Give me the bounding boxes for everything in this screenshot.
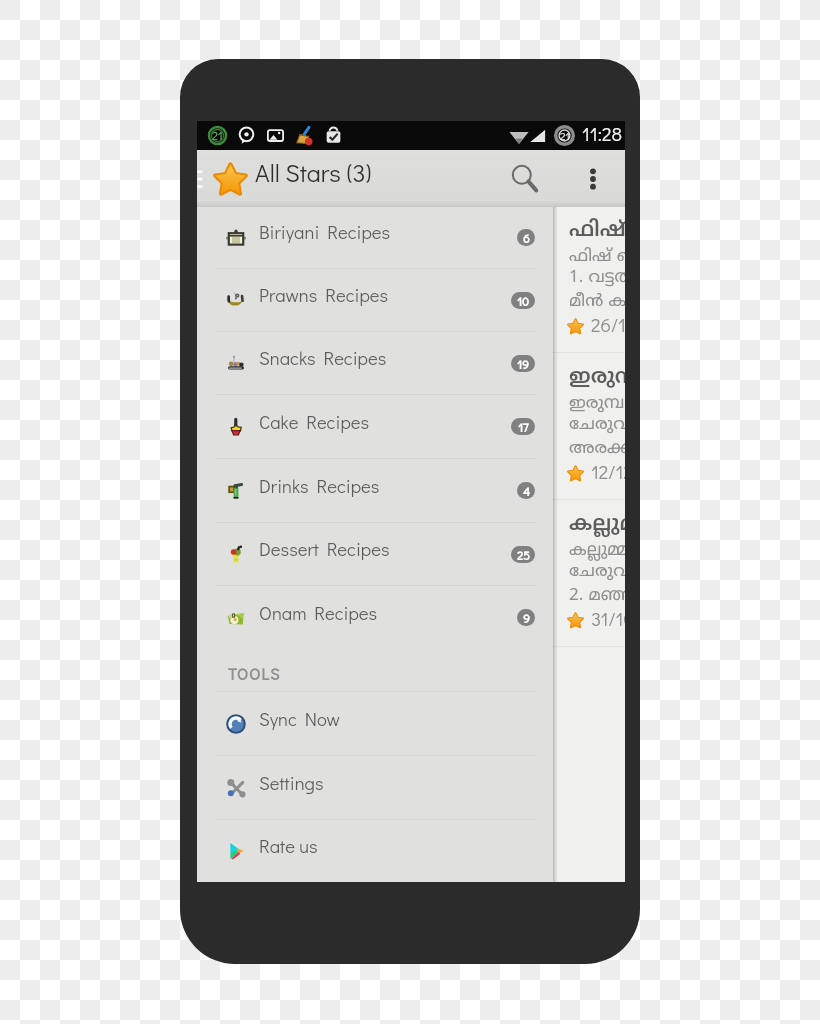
staticText: Cake Recipes <box>259 410 370 434</box>
staticText: 11:28 <box>582 121 622 146</box>
staticText: 4 <box>523 483 530 499</box>
staticText: 19 <box>517 356 529 372</box>
staticText: കല്ലുമ്മ <box>569 512 625 538</box>
staticText: 1. വട്ടത്തിൽ <box>569 267 625 288</box>
button[interactable]: Open navigation drawer <box>197 150 211 207</box>
button[interactable]: Search <box>502 155 550 203</box>
button[interactable]: Cake Recipes <box>197 395 553 458</box>
staticText: 31/10 <box>591 606 625 631</box>
staticText: ഫിഷ് മോളി <box>569 218 625 244</box>
button[interactable]: Rate us <box>197 820 553 881</box>
staticText: Snacks Recipes <box>259 346 387 370</box>
staticText: ചേരുവകൾ <box>569 414 625 435</box>
staticText: Settings <box>259 771 324 795</box>
staticText: TOOLS <box>228 663 281 684</box>
staticText: 26/12 <box>591 312 625 337</box>
staticText: Drinks Recipes <box>259 474 380 498</box>
staticText: 12/12 <box>591 459 625 484</box>
staticText: അരക്കിലോ <box>569 438 625 459</box>
staticText: 9 <box>523 610 530 626</box>
staticText: കല്ലുമ്മക്കായ <box>569 540 625 561</box>
staticText: ഇരുമ്പൻ <box>569 365 625 391</box>
staticText: Biriyani Recipes <box>259 220 391 244</box>
button[interactable]: Dessert Recipes <box>197 523 553 585</box>
button[interactable]: More options <box>571 157 615 201</box>
button[interactable]: Drinks Recipes <box>197 459 553 522</box>
staticText: All Stars (3) <box>255 156 372 189</box>
button[interactable]: Snacks Recipes <box>197 332 553 394</box>
staticText: മീൻ കഷ്ണ <box>569 291 625 312</box>
staticText: Onam Recipes <box>259 601 378 625</box>
staticText: Sync Now <box>259 707 340 731</box>
staticText: 6 <box>523 230 530 246</box>
button[interactable]: Prawns Recipes <box>197 269 553 331</box>
staticText: Prawns Recipes <box>259 283 389 307</box>
staticText: ചേരുവകൾ <box>569 561 625 582</box>
staticText: ഇരുമ്പൻപുളി <box>569 393 625 414</box>
staticText: ഫിഷ് ബിരിയാണി <box>569 246 625 267</box>
button[interactable]: Biriyani Recipes <box>197 206 553 268</box>
button[interactable]: Sync Now <box>197 692 553 755</box>
staticText: 21 <box>212 127 223 143</box>
staticText: 25 <box>517 547 530 563</box>
button[interactable]: Settings <box>197 756 553 819</box>
staticText: 10 <box>517 293 529 309</box>
staticText: Rate us <box>259 834 318 858</box>
button[interactable]: Onam Recipes <box>197 586 553 649</box>
staticText: 2. മഞ്ഞൾ <box>569 585 625 606</box>
staticText: 17 <box>518 419 529 435</box>
staticText: Dessert Recipes <box>259 537 390 561</box>
staticText: 21 <box>560 128 570 142</box>
